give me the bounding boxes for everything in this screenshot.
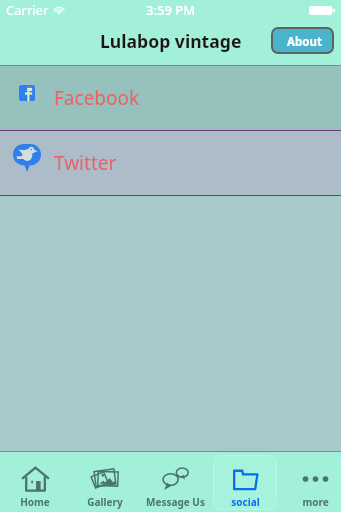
staticText: Facebook xyxy=(54,85,140,111)
staticText: social xyxy=(231,495,260,509)
button[interactable]: Message Us xyxy=(143,455,207,510)
button[interactable]: Home xyxy=(3,455,67,510)
staticText: Gallery xyxy=(87,495,123,509)
button[interactable]: Twitter xyxy=(0,131,341,195)
staticText: 3:59 PM xyxy=(146,1,196,19)
button[interactable]: Facebook xyxy=(0,66,341,130)
staticText: Message Us xyxy=(146,495,205,509)
button[interactable]: About xyxy=(271,27,334,54)
button[interactable]: Gallery xyxy=(73,455,137,510)
staticText: About xyxy=(287,34,322,50)
staticText: Home xyxy=(20,495,50,509)
button[interactable]: more xyxy=(283,455,341,510)
staticText: more xyxy=(302,495,329,509)
staticText: Twitter xyxy=(54,150,117,176)
staticText: Carrier xyxy=(6,1,49,19)
button[interactable]: social xyxy=(213,455,277,510)
staticText: Lulabop vintage xyxy=(100,29,242,53)
